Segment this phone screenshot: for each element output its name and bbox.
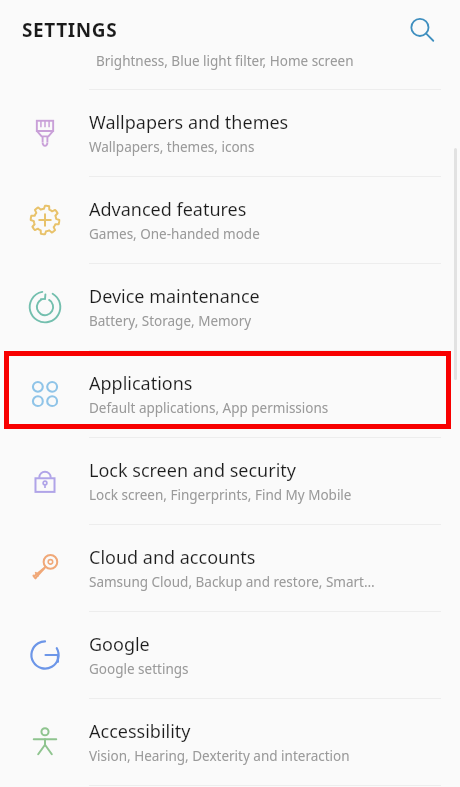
button[interactable]: Device maintenance xyxy=(0,264,460,350)
staticText: Google xyxy=(89,632,150,657)
staticText: Lock screen, Fingerprints, Find My Mobil… xyxy=(89,486,352,504)
button[interactable]: Advanced features xyxy=(0,177,460,263)
button[interactable]: Search xyxy=(398,6,446,54)
button[interactable]: Accessibility xyxy=(0,699,460,785)
staticText: Accessibility xyxy=(89,719,191,744)
staticText: Vision, Hearing, Dexterity and interacti… xyxy=(89,747,350,765)
button[interactable]: Google xyxy=(0,612,460,698)
button[interactable]: Brightness, Blue light filter, Home scre… xyxy=(0,59,460,89)
staticText: Default applications, App permissions xyxy=(89,399,329,417)
button[interactable]: Applications xyxy=(0,351,460,437)
staticText: Cloud and accounts xyxy=(89,545,256,570)
staticText: Advanced features xyxy=(89,197,247,222)
staticText: Applications xyxy=(89,371,193,396)
button[interactable]: Wallpapers and themes xyxy=(0,90,460,176)
staticText: Device maintenance xyxy=(89,284,260,309)
staticText: Lock screen and security xyxy=(89,458,296,483)
staticText: SETTINGS xyxy=(22,17,118,43)
staticText: Google settings xyxy=(89,660,189,678)
staticText: Games, One-handed mode xyxy=(89,225,260,243)
staticText: Wallpapers, themes, icons xyxy=(89,138,255,156)
staticText: Samsung Cloud, Backup and restore, Smart… xyxy=(89,573,375,591)
button[interactable]: Cloud and accounts xyxy=(0,525,460,611)
staticText: Wallpapers and themes xyxy=(89,110,289,135)
staticText: Battery, Storage, Memory xyxy=(89,312,252,330)
staticText: Brightness, Blue light filter, Home scre… xyxy=(96,52,354,70)
button[interactable]: Lock screen and security xyxy=(0,438,460,524)
